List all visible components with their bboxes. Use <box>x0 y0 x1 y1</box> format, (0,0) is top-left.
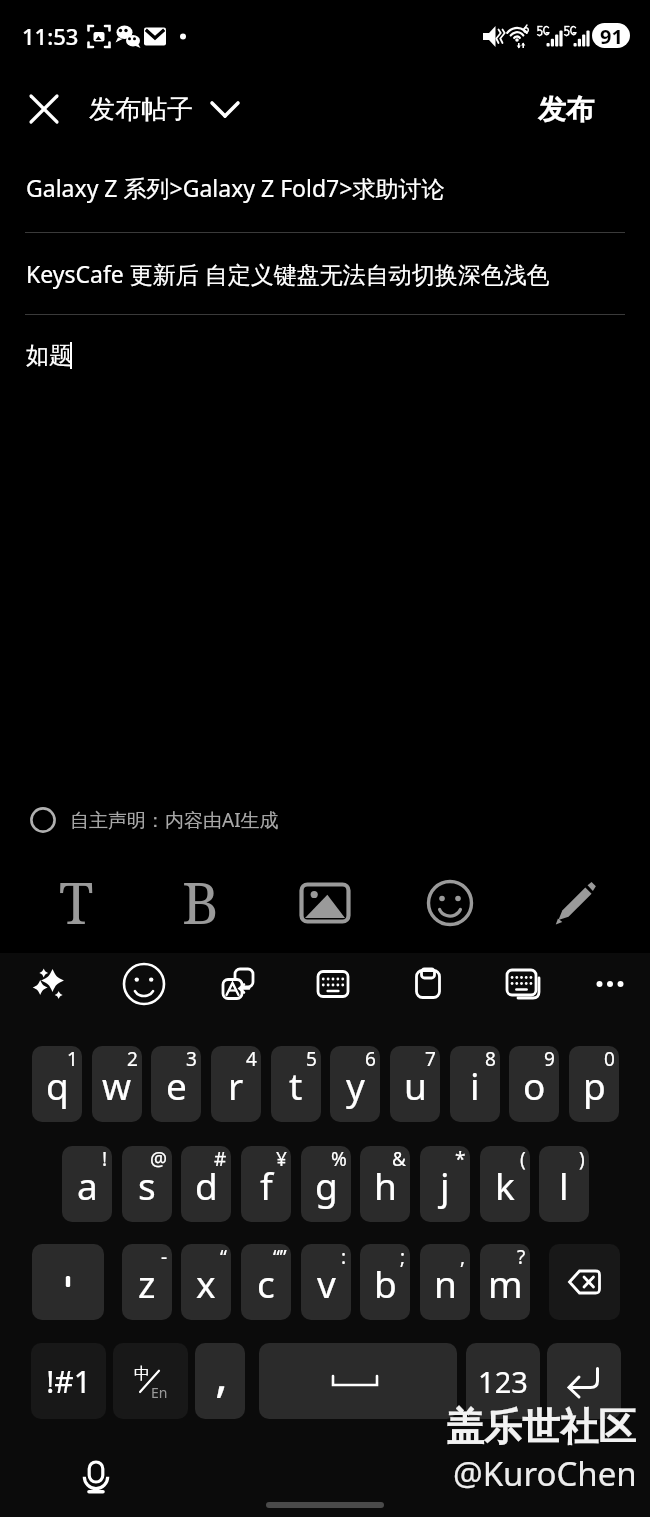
button[interactable]: Translate <box>208 954 268 1014</box>
button[interactable]: 8 <box>450 1046 500 1122</box>
staticText: a <box>77 1160 98 1210</box>
button[interactable]: ) <box>539 1146 589 1222</box>
staticText: e <box>166 1060 187 1110</box>
button[interactable]: 1 <box>32 1046 82 1122</box>
staticText: 123 <box>478 1362 528 1401</box>
staticText: v <box>317 1258 336 1308</box>
staticText: w <box>102 1060 132 1110</box>
staticText: % <box>331 1146 347 1172</box>
staticText: - <box>161 1244 168 1270</box>
staticText: 11:53 <box>22 21 79 51</box>
button[interactable]: % <box>301 1146 351 1222</box>
button[interactable]: Clipboard <box>398 954 458 1014</box>
button[interactable]: * <box>420 1146 470 1222</box>
staticText: c <box>257 1258 275 1308</box>
button[interactable]: & <box>360 1146 410 1222</box>
button[interactable]: Enter <box>547 1343 621 1419</box>
staticText: 3 <box>186 1046 197 1072</box>
button[interactable]: “ <box>181 1244 231 1320</box>
staticText: , <box>215 1341 228 1406</box>
staticText: 发布帖子 <box>89 93 193 126</box>
button[interactable]: ( <box>480 1146 530 1222</box>
button[interactable]: 如题 <box>0 315 650 385</box>
staticText: t <box>289 1060 303 1110</box>
button[interactable]: Symbols <box>31 1343 106 1419</box>
button[interactable]: 6 <box>330 1046 380 1122</box>
button[interactable]: More options <box>580 954 640 1014</box>
button[interactable]: 0 <box>569 1046 619 1122</box>
staticText: @KuroChen <box>453 1451 637 1496</box>
staticText: j <box>440 1160 450 1210</box>
button[interactable]: 发布帖子 <box>89 80 241 138</box>
button[interactable]: ? <box>480 1244 530 1320</box>
button[interactable]: Switch language <box>113 1343 188 1419</box>
staticText: q <box>46 1060 69 1110</box>
staticText: ; <box>400 1244 406 1270</box>
button[interactable]: # <box>181 1146 231 1222</box>
staticText: m <box>488 1258 523 1308</box>
button[interactable]: 3 <box>151 1046 201 1122</box>
button[interactable]: KeysCafe 更新后 自定义键盘无法自动切换深色浅色 <box>0 233 650 314</box>
button[interactable]: “” <box>241 1244 291 1320</box>
staticText: ¥ <box>276 1146 287 1172</box>
button[interactable]: Bold <box>159 862 241 944</box>
staticText: u <box>404 1060 427 1110</box>
staticText: KeysCafe 更新后 自定义键盘无法自动切换深色浅色 <box>26 258 550 289</box>
button[interactable]: Keyboard mode <box>303 954 363 1014</box>
button[interactable]: Split keyboard <box>493 954 553 1014</box>
staticText: f <box>260 1160 273 1210</box>
button[interactable]: 2 <box>92 1046 142 1122</box>
staticText: & <box>392 1146 406 1172</box>
staticText: n <box>434 1258 457 1308</box>
staticText: * <box>455 1146 466 1172</box>
button[interactable]: Comma <box>195 1343 245 1419</box>
staticText: 发布 <box>538 92 594 127</box>
staticText: i <box>470 1060 480 1110</box>
staticText: 9 <box>544 1046 555 1072</box>
staticText: 7 <box>425 1046 436 1072</box>
button[interactable]: 7 <box>390 1046 440 1122</box>
button[interactable]: 发布 <box>510 80 622 138</box>
button[interactable]: Emoji <box>409 862 491 944</box>
button[interactable]: Draw <box>534 862 616 944</box>
button[interactable]: Insert image <box>284 862 366 944</box>
button[interactable]: Emoji <box>114 954 174 1014</box>
staticText: ) <box>579 1146 585 1172</box>
staticText: 8 <box>485 1046 496 1072</box>
staticText: , <box>460 1244 466 1270</box>
staticText: 盖乐世社区 <box>446 1403 636 1451</box>
staticText: ? <box>517 1244 526 1270</box>
staticText: 0 <box>604 1046 615 1072</box>
staticText: d <box>195 1160 218 1210</box>
button[interactable]: ¥ <box>241 1146 291 1222</box>
staticText: p <box>583 1060 606 1110</box>
button[interactable]: ; <box>360 1244 410 1320</box>
button[interactable]: Apostrophe <box>32 1244 104 1320</box>
staticText: 自主声明：内容由AI生成 <box>70 807 279 833</box>
button[interactable]: 4 <box>211 1046 261 1122</box>
button[interactable]: Galaxy Z 系列>Galaxy Z Fold7>求助讨论 <box>0 146 650 232</box>
button[interactable]: 自主声明：内容由AI生成 <box>30 795 279 845</box>
button[interactable]: : <box>301 1244 351 1320</box>
button[interactable]: @ <box>122 1146 172 1222</box>
staticText: l <box>559 1160 569 1210</box>
button[interactable]: - <box>122 1244 172 1320</box>
button[interactable]: AI assist <box>19 954 79 1014</box>
staticText: o <box>523 1060 546 1110</box>
staticText: En <box>151 1383 168 1402</box>
staticText: 中 <box>134 1364 150 1384</box>
button[interactable]: 5 <box>271 1046 321 1122</box>
button[interactable]: Text style <box>35 862 117 944</box>
staticText: y <box>346 1060 365 1110</box>
button[interactable]: ! <box>62 1146 112 1222</box>
button[interactable]: Close <box>20 85 68 133</box>
button[interactable]: Voice input <box>70 1445 122 1497</box>
button[interactable]: , <box>420 1244 470 1320</box>
button[interactable]: Backspace <box>549 1244 620 1320</box>
staticText: s <box>138 1160 156 1210</box>
button[interactable]: Numbers <box>466 1343 540 1419</box>
staticText: “ <box>220 1244 227 1270</box>
staticText: r <box>228 1060 244 1110</box>
button[interactable]: Space <box>259 1343 457 1419</box>
button[interactable]: 9 <box>509 1046 559 1122</box>
